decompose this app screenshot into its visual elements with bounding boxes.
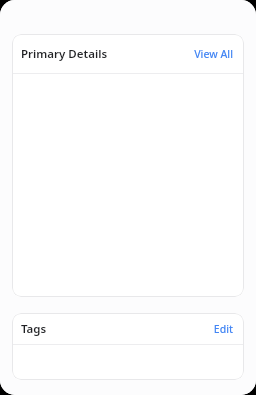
staticText: Primary Details	[21, 46, 108, 62]
button[interactable]: View All	[192, 43, 235, 65]
staticText: Edit	[213, 322, 233, 336]
button[interactable]: Edit	[211, 318, 235, 340]
staticText: View All	[194, 47, 233, 61]
staticText: Tags	[21, 321, 47, 337]
